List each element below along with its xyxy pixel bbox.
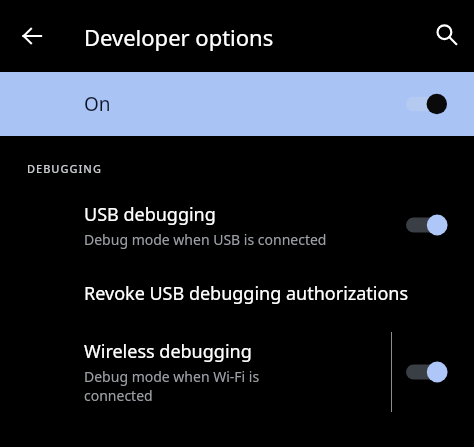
staticText: USB debugging bbox=[84, 202, 216, 227]
staticText: Revoke USB debugging authorizations bbox=[84, 281, 409, 306]
staticText: Debug mode when Wi-Fi is connected bbox=[84, 367, 260, 405]
staticText: Wireless debugging bbox=[84, 339, 252, 364]
button[interactable]: Navigate up bbox=[8, 12, 56, 60]
staticText: On bbox=[84, 91, 111, 117]
button[interactable]: USB debugging bbox=[0, 188, 474, 262]
button[interactable]: Search bbox=[422, 10, 470, 58]
button[interactable]: Wireless debugging bbox=[0, 324, 474, 420]
button[interactable]: Toggle Wireless debugging bbox=[406, 352, 458, 392]
button[interactable]: Revoke USB debugging authorizations bbox=[0, 262, 474, 324]
button[interactable]: Toggle USB debugging bbox=[406, 205, 458, 245]
staticText: DEBUGGING bbox=[27, 161, 102, 176]
button[interactable]: On bbox=[0, 72, 474, 136]
staticText: Developer options bbox=[84, 22, 274, 52]
staticText: Debug mode when USB is connected bbox=[84, 230, 327, 249]
button[interactable]: Developer options on bbox=[406, 84, 458, 124]
